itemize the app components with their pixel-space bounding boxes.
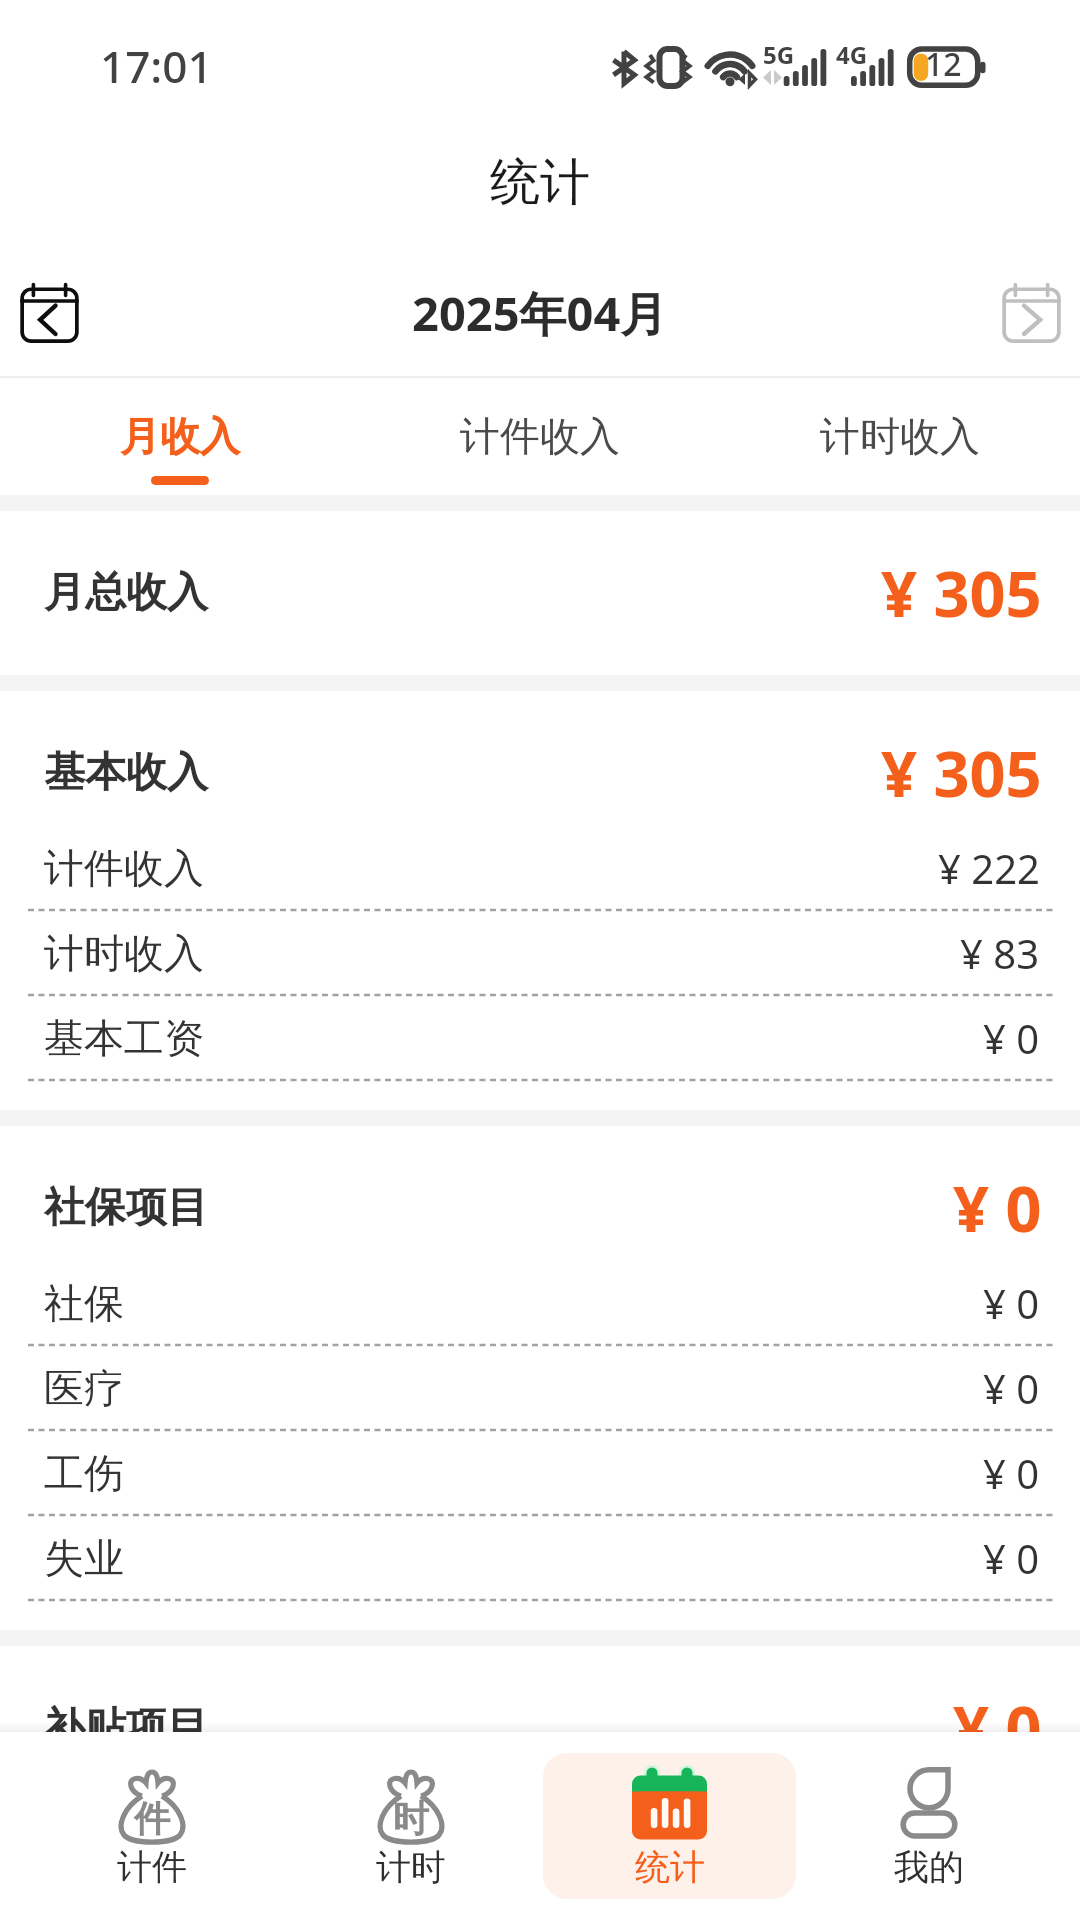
staticText: 12 bbox=[925, 42, 962, 86]
staticText: 社保项目 bbox=[44, 1182, 208, 1234]
button[interactable]: 件 bbox=[25, 1753, 278, 1899]
staticText: 17:01 bbox=[100, 36, 213, 96]
button[interactable]: 社保 bbox=[0, 1261, 1080, 1344]
staticText: 统计 bbox=[635, 1845, 705, 1889]
button[interactable]: 计件收入 bbox=[0, 826, 1080, 909]
staticText: 计时收入 bbox=[44, 928, 204, 978]
staticText: 月总收入 bbox=[44, 567, 208, 619]
staticText: 件 bbox=[134, 1796, 170, 1841]
staticText: 月收入 bbox=[120, 411, 240, 461]
button[interactable]: Previous month bbox=[5, 269, 93, 357]
staticText: 我的 bbox=[894, 1845, 964, 1889]
button[interactable]: 补贴项目 bbox=[0, 1675, 1080, 1781]
button[interactable]: 社保项目 bbox=[0, 1155, 1080, 1261]
button[interactable]: 工伤 bbox=[0, 1431, 1080, 1514]
staticText: 计件 bbox=[117, 1845, 187, 1889]
staticText: 工伤 bbox=[44, 1448, 124, 1498]
button[interactable]: 医疗 bbox=[0, 1346, 1080, 1429]
button[interactable]: 我的 bbox=[802, 1753, 1055, 1899]
staticText: ¥ 0 bbox=[983, 1446, 1040, 1500]
staticText: ¥ 305 bbox=[881, 730, 1042, 816]
staticText: ¥ 83 bbox=[960, 926, 1040, 980]
staticText: ¥ 0 bbox=[983, 1531, 1040, 1585]
button[interactable]: 统计 bbox=[543, 1753, 796, 1899]
staticText: 计时 bbox=[376, 1845, 446, 1889]
staticText: 2025年04月 bbox=[412, 281, 668, 345]
button[interactable]: 计时收入 bbox=[0, 911, 1080, 994]
staticText: ¥ 0 bbox=[953, 1165, 1042, 1251]
button[interactable]: 计件收入 bbox=[360, 378, 720, 495]
staticText: 统计 bbox=[490, 151, 590, 214]
staticText: 基本收入 bbox=[44, 747, 208, 799]
staticText: 时 bbox=[393, 1796, 429, 1841]
button[interactable]: 月总收入 bbox=[0, 540, 1080, 646]
button[interactable]: 基本收入 bbox=[0, 720, 1080, 826]
staticText: 医疗 bbox=[44, 1363, 124, 1413]
button[interactable]: 基本工资 bbox=[0, 996, 1080, 1079]
button[interactable]: 失业 bbox=[0, 1516, 1080, 1599]
staticText: ¥ 305 bbox=[881, 550, 1042, 636]
staticText: 4G bbox=[836, 38, 868, 71]
staticText: ¥ 0 bbox=[983, 1276, 1040, 1330]
staticText: 失业 bbox=[44, 1533, 124, 1583]
staticText: ¥ 0 bbox=[983, 1361, 1040, 1415]
staticText: 基本工资 bbox=[44, 1013, 204, 1063]
button[interactable]: 时 bbox=[284, 1753, 537, 1899]
button[interactable]: 月收入 bbox=[0, 378, 360, 495]
staticText: 计件收入 bbox=[460, 411, 620, 461]
staticText: ¥ 0 bbox=[953, 1685, 1042, 1771]
staticText: 计件收入 bbox=[44, 843, 204, 893]
staticText: 社保 bbox=[44, 1278, 124, 1328]
staticText: ¥ 0 bbox=[983, 1011, 1040, 1065]
button[interactable]: Next month bbox=[987, 269, 1075, 357]
staticText: 5G bbox=[763, 38, 795, 71]
staticText: 计时收入 bbox=[820, 411, 980, 461]
button[interactable]: 计时收入 bbox=[720, 378, 1080, 495]
staticText: ¥ 222 bbox=[938, 841, 1040, 895]
staticText: 补贴项目 bbox=[44, 1702, 208, 1754]
